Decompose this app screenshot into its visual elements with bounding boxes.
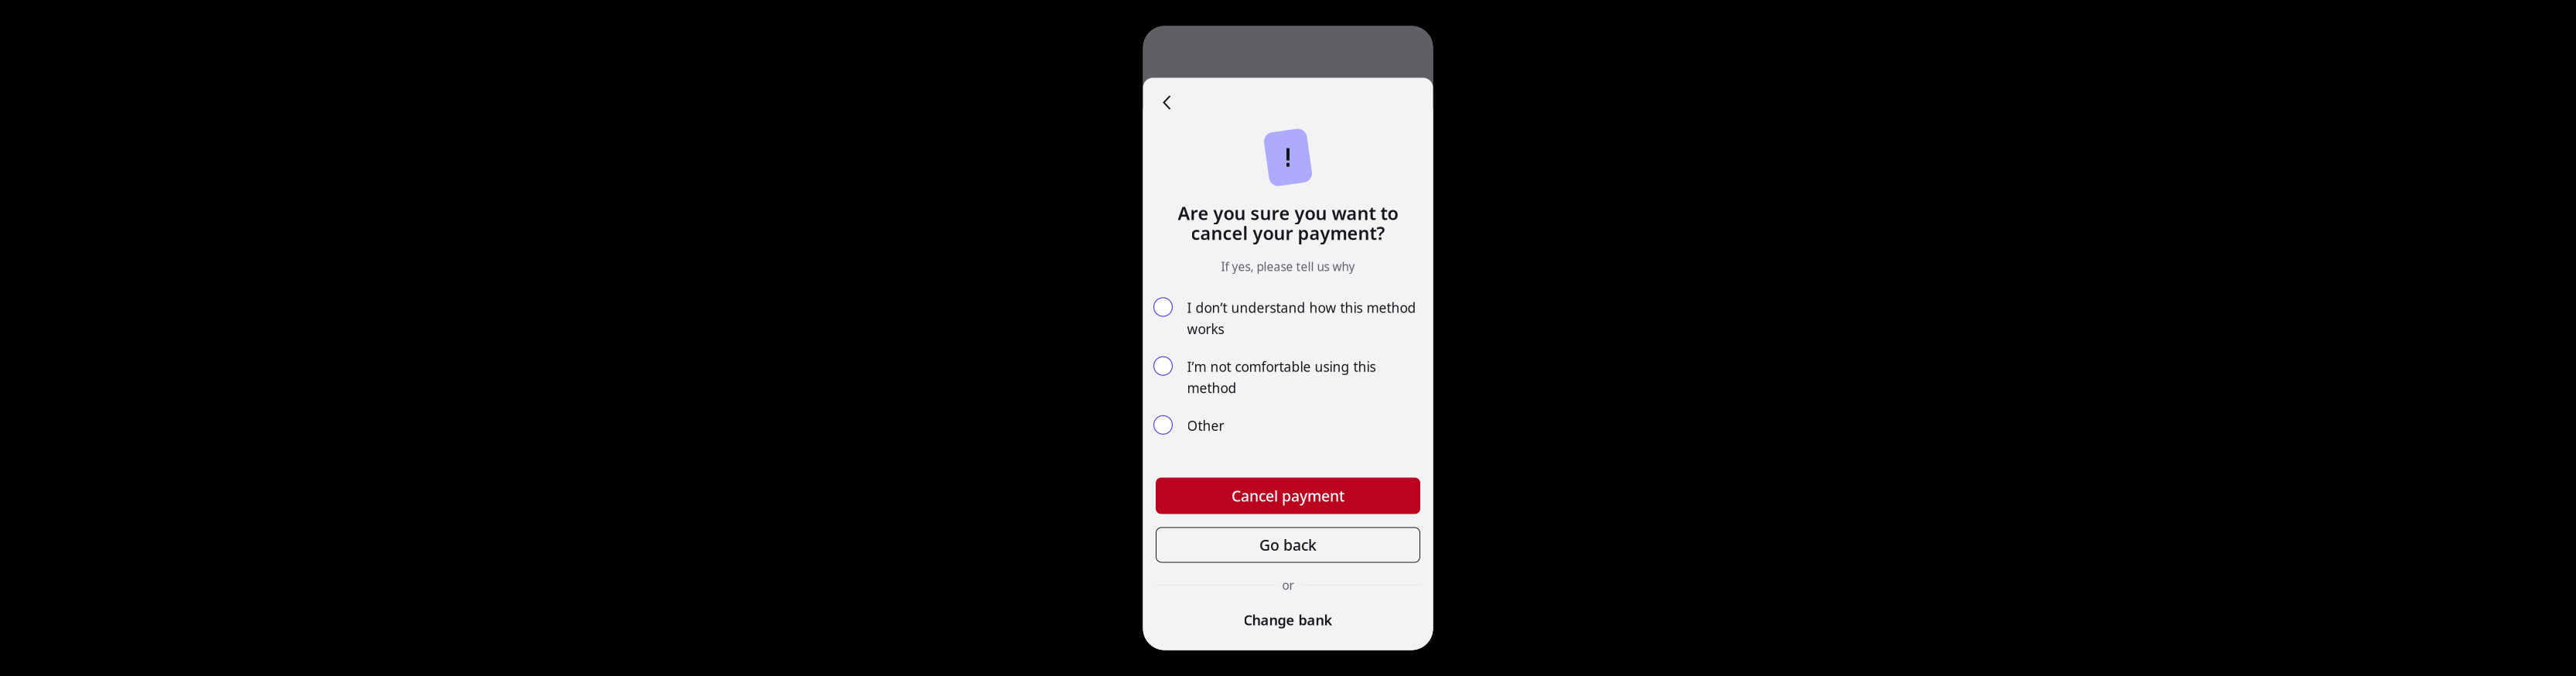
- staticText: or: [1282, 577, 1294, 593]
- staticText: Other: [1187, 416, 1224, 435]
- button[interactable]: I don’t understand how this method: [1154, 298, 1422, 338]
- staticText: I’m not comfortable using this: [1187, 357, 1376, 376]
- button[interactable]: I’m not comfortable using this: [1154, 357, 1422, 397]
- button[interactable]: Other: [1154, 416, 1422, 435]
- staticText: Go back: [1259, 535, 1317, 555]
- staticText: If yes, please tell us why: [1221, 258, 1355, 275]
- button[interactable]: Go back: [1156, 527, 1420, 563]
- staticText: Are you sure you want to: [1178, 201, 1398, 225]
- button[interactable]: Back: [1163, 86, 1196, 119]
- staticText: method: [1187, 379, 1237, 397]
- staticText: Cancel payment: [1232, 486, 1344, 506]
- staticText: Change bank: [1244, 610, 1332, 629]
- staticText: cancel your payment?: [1191, 221, 1385, 245]
- staticText: I don’t understand how this method: [1187, 298, 1416, 317]
- staticText: works: [1187, 320, 1224, 338]
- button[interactable]: Change bank: [1156, 606, 1420, 634]
- button[interactable]: Cancel payment: [1156, 478, 1420, 514]
